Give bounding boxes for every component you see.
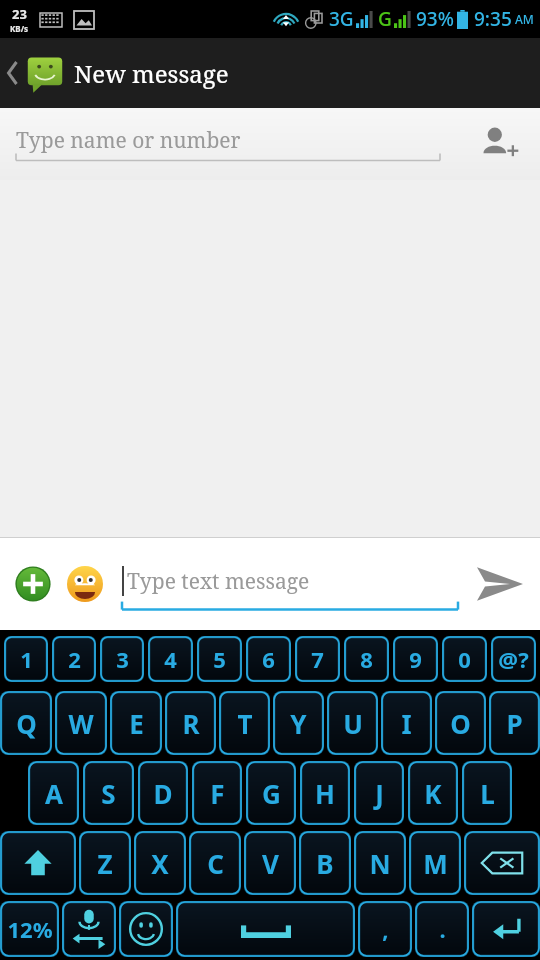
button[interactable]: Y: [273, 691, 324, 755]
button[interactable]: F: [192, 761, 242, 825]
button[interactable]: 12%: [0, 901, 59, 957]
button[interactable]: Emoji: [62, 561, 108, 607]
staticText: 7: [311, 644, 324, 674]
staticText: Y: [290, 706, 307, 741]
button[interactable]: Add attachment: [10, 561, 56, 607]
staticText: I: [401, 706, 412, 741]
staticText: G: [262, 776, 281, 811]
button[interactable]: R: [165, 691, 216, 755]
staticText: N: [369, 846, 391, 881]
button[interactable]: X: [134, 831, 186, 895]
button[interactable]: A: [28, 761, 79, 825]
staticText: E: [129, 706, 144, 741]
button[interactable]: 0: [442, 636, 487, 682]
staticText: 3G: [329, 6, 354, 32]
staticText: Z: [97, 846, 113, 881]
staticText: 3: [116, 644, 129, 674]
staticText: Q: [16, 706, 37, 741]
button[interactable]: 8: [344, 636, 389, 682]
button[interactable]: 2: [52, 636, 96, 682]
staticText: New message: [74, 57, 229, 90]
button[interactable]: H: [300, 761, 350, 825]
button[interactable]: 4: [148, 636, 193, 682]
button[interactable]: Voice input: [62, 901, 116, 957]
staticText: 6: [262, 644, 275, 674]
staticText: U: [343, 706, 363, 741]
button[interactable]: M: [409, 831, 461, 895]
staticText: KB/s: [10, 23, 28, 34]
button[interactable]: 7: [295, 636, 340, 682]
button[interactable]: Emoji: [119, 901, 173, 957]
staticText: 0: [458, 644, 471, 674]
button[interactable]: Type text message: [122, 552, 458, 616]
staticText: 4: [164, 644, 177, 674]
staticText: 8: [360, 644, 373, 674]
staticText: M: [423, 846, 448, 881]
staticText: 2: [68, 644, 81, 674]
button[interactable]: J: [354, 761, 404, 825]
button[interactable]: Type name or number: [16, 121, 440, 167]
staticText: 23: [12, 5, 27, 23]
staticText: 12%: [7, 914, 53, 944]
button[interactable]: 3: [100, 636, 144, 682]
staticText: L: [480, 776, 495, 811]
button[interactable]: Send: [458, 549, 540, 619]
button[interactable]: G: [246, 761, 296, 825]
button[interactable]: V: [244, 831, 296, 895]
button[interactable]: .: [415, 901, 469, 957]
button[interactable]: T: [219, 691, 270, 755]
button[interactable]: Shift: [0, 831, 76, 895]
button[interactable]: Backspace: [464, 831, 540, 895]
button[interactable]: W: [55, 691, 107, 755]
staticText: Type text message: [127, 567, 310, 596]
button[interactable]: 9: [393, 636, 438, 682]
staticText: X: [151, 846, 169, 881]
staticText: S: [101, 776, 116, 811]
staticText: F: [210, 776, 225, 811]
staticText: @?: [498, 644, 529, 674]
staticText: Type name or number: [16, 126, 241, 155]
button[interactable]: C: [189, 831, 241, 895]
staticText: A: [45, 776, 63, 811]
staticText: J: [375, 776, 384, 811]
staticText: O: [450, 706, 471, 741]
button[interactable]: P: [489, 691, 540, 755]
button[interactable]: U: [327, 691, 378, 755]
button[interactable]: Enter: [472, 901, 540, 957]
staticText: 1: [20, 644, 33, 674]
button[interactable]: Space: [176, 901, 355, 957]
staticText: D: [153, 776, 173, 811]
button[interactable]: O: [435, 691, 486, 755]
button[interactable]: 6: [246, 636, 291, 682]
staticText: 9: [409, 644, 422, 674]
button[interactable]: Z: [79, 831, 131, 895]
button[interactable]: N: [354, 831, 406, 895]
button[interactable]: Back: [0, 38, 74, 108]
button[interactable]: K: [408, 761, 458, 825]
button[interactable]: S: [83, 761, 134, 825]
button[interactable]: E: [110, 691, 162, 755]
button[interactable]: 1: [4, 636, 48, 682]
staticText: C: [207, 846, 224, 881]
button[interactable]: Q: [0, 691, 52, 755]
staticText: V: [262, 846, 279, 881]
staticText: T: [237, 706, 253, 741]
button[interactable]: B: [299, 831, 351, 895]
staticText: G: [378, 6, 392, 32]
staticText: AM: [515, 11, 534, 27]
button[interactable]: @?: [491, 636, 536, 682]
button[interactable]: 5: [197, 636, 242, 682]
button[interactable]: ,: [358, 901, 412, 957]
staticText: 5: [213, 644, 226, 674]
button[interactable]: I: [381, 691, 432, 755]
staticText: R: [182, 706, 200, 741]
staticText: .: [439, 914, 446, 944]
staticText: P: [506, 706, 523, 741]
button[interactable]: D: [138, 761, 188, 825]
button[interactable]: L: [462, 761, 512, 825]
staticText: 93%: [416, 6, 454, 32]
staticText: W: [68, 706, 94, 741]
staticText: ,: [382, 914, 389, 944]
staticText: B: [316, 846, 334, 881]
button[interactable]: Add contact: [470, 115, 528, 173]
